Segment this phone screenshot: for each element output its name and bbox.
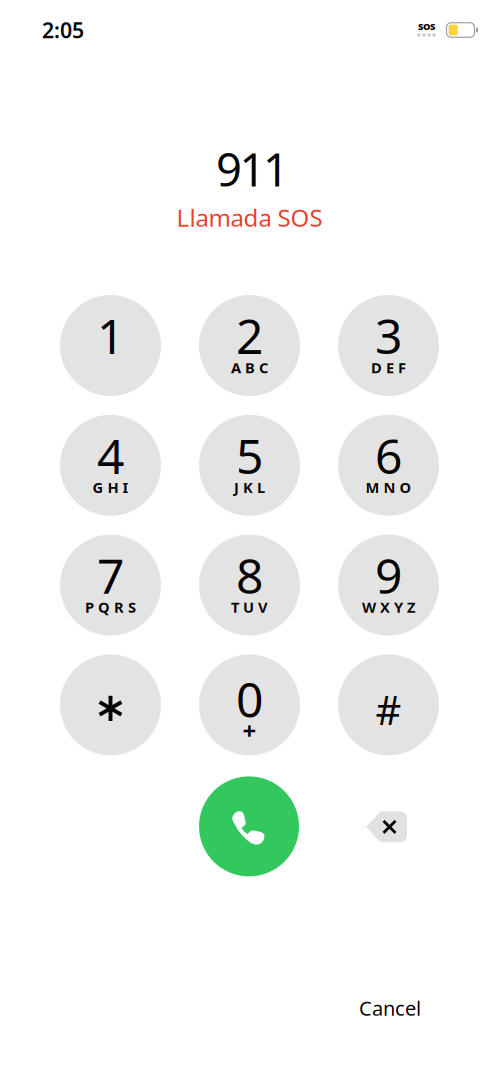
staticText: +	[242, 714, 256, 746]
button[interactable]: 5	[199, 415, 300, 516]
staticText: Cancel	[359, 995, 421, 1021]
staticText: JKL	[234, 478, 265, 497]
button[interactable]: 8	[199, 535, 300, 636]
staticText: 1	[97, 304, 124, 367]
staticText: Llamada SOS	[176, 202, 322, 233]
button[interactable]: Call	[199, 776, 299, 876]
button[interactable]: 4	[60, 415, 161, 516]
button[interactable]: #	[338, 654, 439, 755]
staticText: 2	[236, 304, 263, 367]
staticText: PQRS	[85, 597, 136, 617]
staticText: ABC	[231, 358, 268, 377]
staticText: 8	[236, 543, 263, 607]
staticText: 0	[236, 667, 263, 731]
staticText: 6	[375, 423, 402, 487]
staticText: MNO	[365, 478, 411, 497]
button[interactable]: 6	[338, 415, 439, 516]
staticText: 7	[97, 543, 124, 607]
button[interactable]: 1	[60, 295, 161, 396]
button[interactable]: Delete	[366, 811, 407, 842]
staticText: 9	[375, 543, 402, 607]
button[interactable]: 7	[60, 535, 161, 636]
button[interactable]: Cancel	[340, 986, 440, 1030]
staticText: 911	[216, 139, 289, 199]
staticText: SOS	[418, 20, 435, 33]
button[interactable]: 2	[199, 295, 300, 396]
staticText: 3	[375, 304, 402, 367]
staticText: DEF	[371, 358, 406, 377]
button[interactable]: Star	[60, 654, 161, 755]
button[interactable]: 3	[338, 295, 439, 396]
staticText: GHI	[92, 478, 128, 497]
button[interactable]: 0	[199, 654, 300, 755]
button[interactable]: 9	[338, 535, 439, 636]
staticText: 5	[236, 423, 263, 487]
staticText: 2:05	[42, 16, 84, 44]
staticText: #	[375, 683, 401, 736]
staticText: TUV	[231, 597, 268, 617]
staticText: 4	[97, 423, 124, 487]
staticText: WXYZ	[362, 597, 415, 617]
